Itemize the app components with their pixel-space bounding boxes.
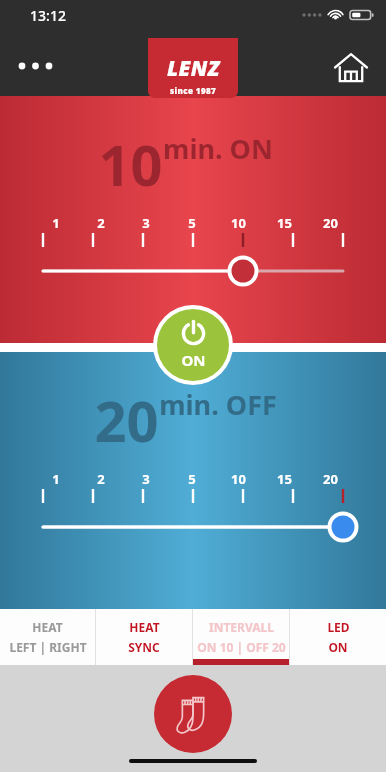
staticText: SYNC [128,639,160,655]
staticText: 20 [94,382,159,458]
staticText: HEAT [129,619,160,635]
staticText: ON [181,350,206,370]
button[interactable]: Power ON [157,309,229,381]
staticText: 10 [98,126,163,202]
staticText: min. ON [163,130,273,167]
staticText: INTERVALL [209,619,274,635]
staticText: 15 [277,470,292,488]
staticText: 5 [188,470,196,488]
button[interactable]: Menu [6,44,62,88]
staticText: 5 [188,214,196,232]
button[interactable]: HEAT [96,609,192,665]
staticText: 1 [52,470,60,488]
staticText: min. OFF [159,386,277,423]
button[interactable]: HEAT [0,609,95,665]
staticText: LEFT | RIGHT [9,639,87,655]
staticText: 1 [52,214,60,232]
staticText: ON [328,639,348,655]
staticText: since 1987 [170,85,217,96]
staticText: 10 [231,214,246,232]
staticText: 10 [231,470,246,488]
staticText: 2 [97,470,105,488]
button[interactable]: Socks [154,675,232,753]
button[interactable]: INTERVALL [193,609,289,665]
staticText: HEAT [32,619,63,635]
staticText: 3 [142,214,150,232]
staticText: 15 [277,214,292,232]
button[interactable]: LENZ [148,38,238,98]
staticText: 20 [323,214,338,232]
staticText: ON 10 | OFF 20 [197,639,286,655]
staticText: 2 [97,214,105,232]
staticText: 13:12 [30,6,66,25]
button[interactable]: LED [290,609,386,665]
staticText: 3 [142,470,150,488]
staticText: LED [327,619,350,635]
button[interactable]: Home [326,42,376,92]
staticText: LENZ [167,54,220,83]
staticText: 20 [323,470,338,488]
